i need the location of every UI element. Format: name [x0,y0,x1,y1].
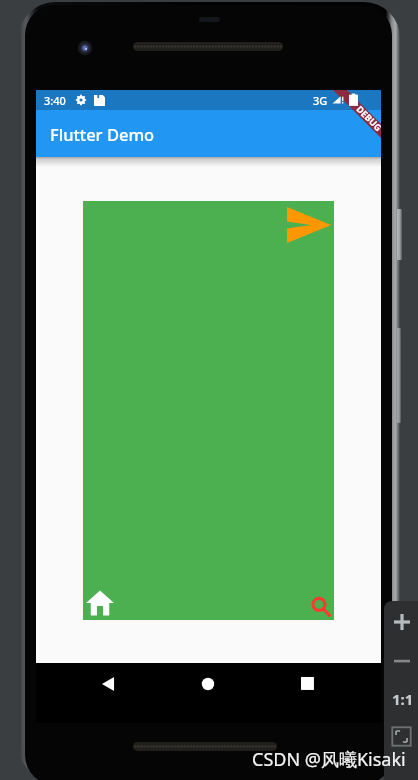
staticText: DEBUG [354,103,381,133]
button[interactable]: Recents [299,675,317,693]
button[interactable]: Fit to screen [390,725,413,748]
button[interactable]: Search [311,597,331,617]
button[interactable]: Zoom in [392,612,412,632]
button[interactable]: Home [86,590,114,616]
button[interactable]: Back [100,675,118,693]
button[interactable]: Actual size [391,687,415,711]
staticText: Flutter Demo [50,123,155,145]
staticText: CSDN @风曦Kisaki [252,747,406,772]
staticText: 3G [313,93,328,108]
staticText: 1:1 [392,689,414,709]
button[interactable]: Zoom out [392,651,412,671]
staticText: 3:40 [44,93,66,108]
button[interactable]: Home [199,675,217,693]
button[interactable]: Send [287,207,331,243]
